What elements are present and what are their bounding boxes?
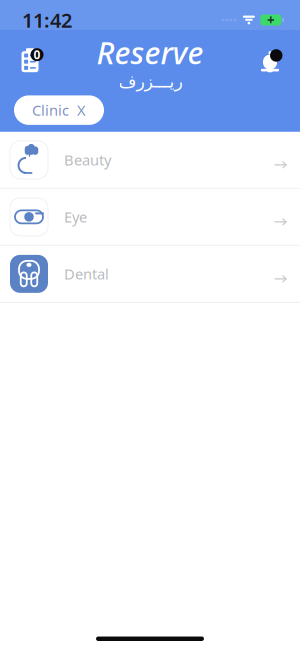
staticText: Clinic X — [32, 100, 86, 120]
button[interactable]: My bookings — [8, 42, 52, 82]
button[interactable]: Notifications — [248, 42, 292, 82]
button[interactable]: Dental — [0, 246, 300, 303]
button[interactable]: Beauty — [0, 132, 300, 189]
staticText: 11:42 — [22, 7, 72, 33]
staticText: 0 — [33, 47, 40, 63]
button[interactable]: Eye — [0, 189, 300, 246]
staticText: Beauty — [64, 150, 111, 170]
staticText: Dental — [64, 264, 109, 284]
button[interactable]: Clinic X — [14, 95, 104, 125]
staticText: + — [267, 11, 275, 29]
staticText: Reserve — [96, 32, 203, 73]
staticText: ريـــزرف — [118, 72, 182, 91]
staticText: Eye — [64, 207, 87, 227]
